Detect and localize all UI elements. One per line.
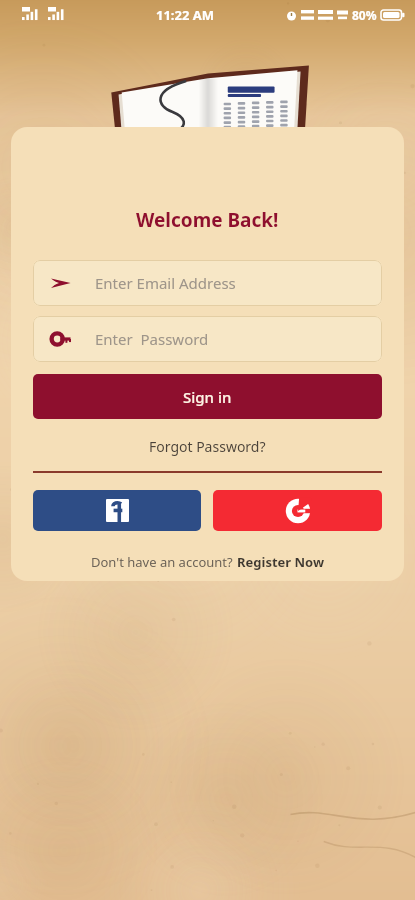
button[interactable]: Forgot Password? xyxy=(141,435,274,458)
staticText: Register Now xyxy=(237,553,325,571)
button[interactable]: Sign in with Google xyxy=(213,490,382,531)
button[interactable]: Sign in with Facebook xyxy=(33,490,201,531)
staticText: 80% xyxy=(352,7,377,23)
staticText: Don't have an account? xyxy=(91,553,237,571)
button[interactable]: Don't have an account? xyxy=(85,551,331,573)
staticText: Enter Email Address xyxy=(95,273,236,293)
staticText: 11:22 AM xyxy=(156,6,215,24)
staticText: Forgot Password? xyxy=(149,437,266,456)
button[interactable]: Enter Password xyxy=(33,316,382,362)
staticText: Welcome Back! xyxy=(136,207,279,233)
staticText: Enter Password xyxy=(95,329,209,349)
button[interactable]: Sign in xyxy=(33,374,382,419)
button[interactable]: Enter Email Address xyxy=(33,260,382,306)
staticText: Sign in xyxy=(183,387,232,407)
